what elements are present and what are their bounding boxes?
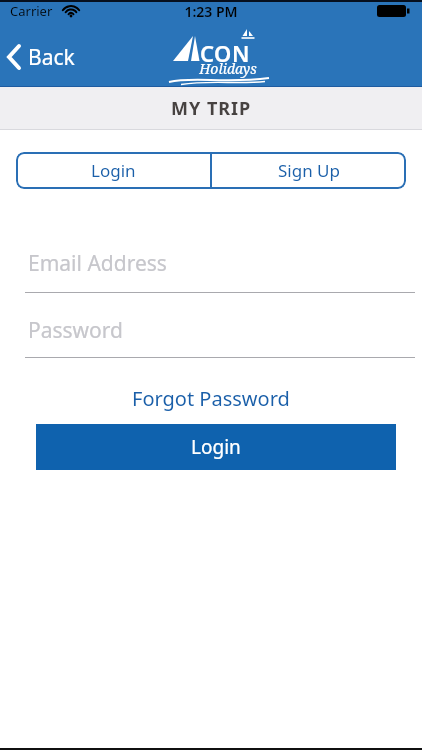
button[interactable]: Sign Up (212, 152, 406, 189)
staticText: Carrier (10, 2, 53, 20)
button[interactable]: Password (25, 305, 415, 357)
staticText: Back (28, 43, 75, 72)
staticText: MY TRIP (171, 96, 252, 121)
button[interactable]: Email Address (25, 240, 415, 292)
button[interactable]: Forgot Password (131, 383, 291, 413)
button[interactable]: Back (6, 38, 98, 76)
staticText: Holidays (167, 59, 289, 78)
staticText: Sign Up (278, 159, 340, 182)
staticText: Password (28, 316, 123, 345)
staticText: 1:23 PM (0, 2, 422, 21)
staticText: Forgot Password (132, 385, 290, 412)
staticText: Login (91, 159, 136, 182)
staticText: Login (191, 434, 241, 460)
staticText: CON (200, 38, 250, 68)
staticText: Email Address (28, 249, 167, 278)
button[interactable]: Login (36, 424, 396, 470)
button[interactable]: Login (16, 152, 210, 189)
